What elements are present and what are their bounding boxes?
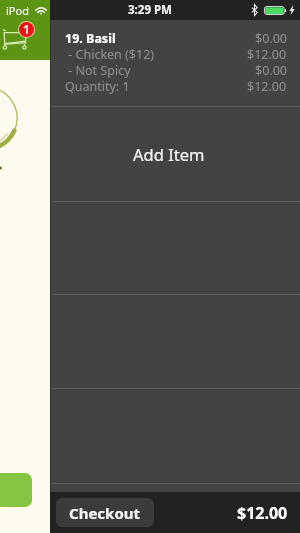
staticText: iPod <box>6 3 29 18</box>
staticText: 1 <box>23 22 30 37</box>
staticText: $12.00 <box>237 502 288 524</box>
button[interactable]: Add Item <box>50 107 300 201</box>
button[interactable]: Checkout <box>56 498 154 527</box>
button[interactable]: 19. Basil <box>50 20 300 106</box>
staticText: Quantity: 1 <box>65 78 130 94</box>
button[interactable]: Menu <box>0 473 32 507</box>
staticText: 3:29 PM <box>128 2 172 18</box>
staticText: Checkout <box>69 503 141 523</box>
staticText: $12.00 <box>247 46 287 62</box>
button[interactable]: Cart <box>2 28 27 50</box>
staticText: $12.00 <box>247 78 287 94</box>
staticText: Add Item <box>133 143 205 165</box>
staticText: - Not Spicy <box>65 62 131 78</box>
staticText: 19. Basil <box>65 30 116 46</box>
staticText: $0.00 <box>255 62 287 78</box>
staticText: $0.00 <box>255 30 287 46</box>
staticText: - Chicken ($12) <box>65 46 155 62</box>
